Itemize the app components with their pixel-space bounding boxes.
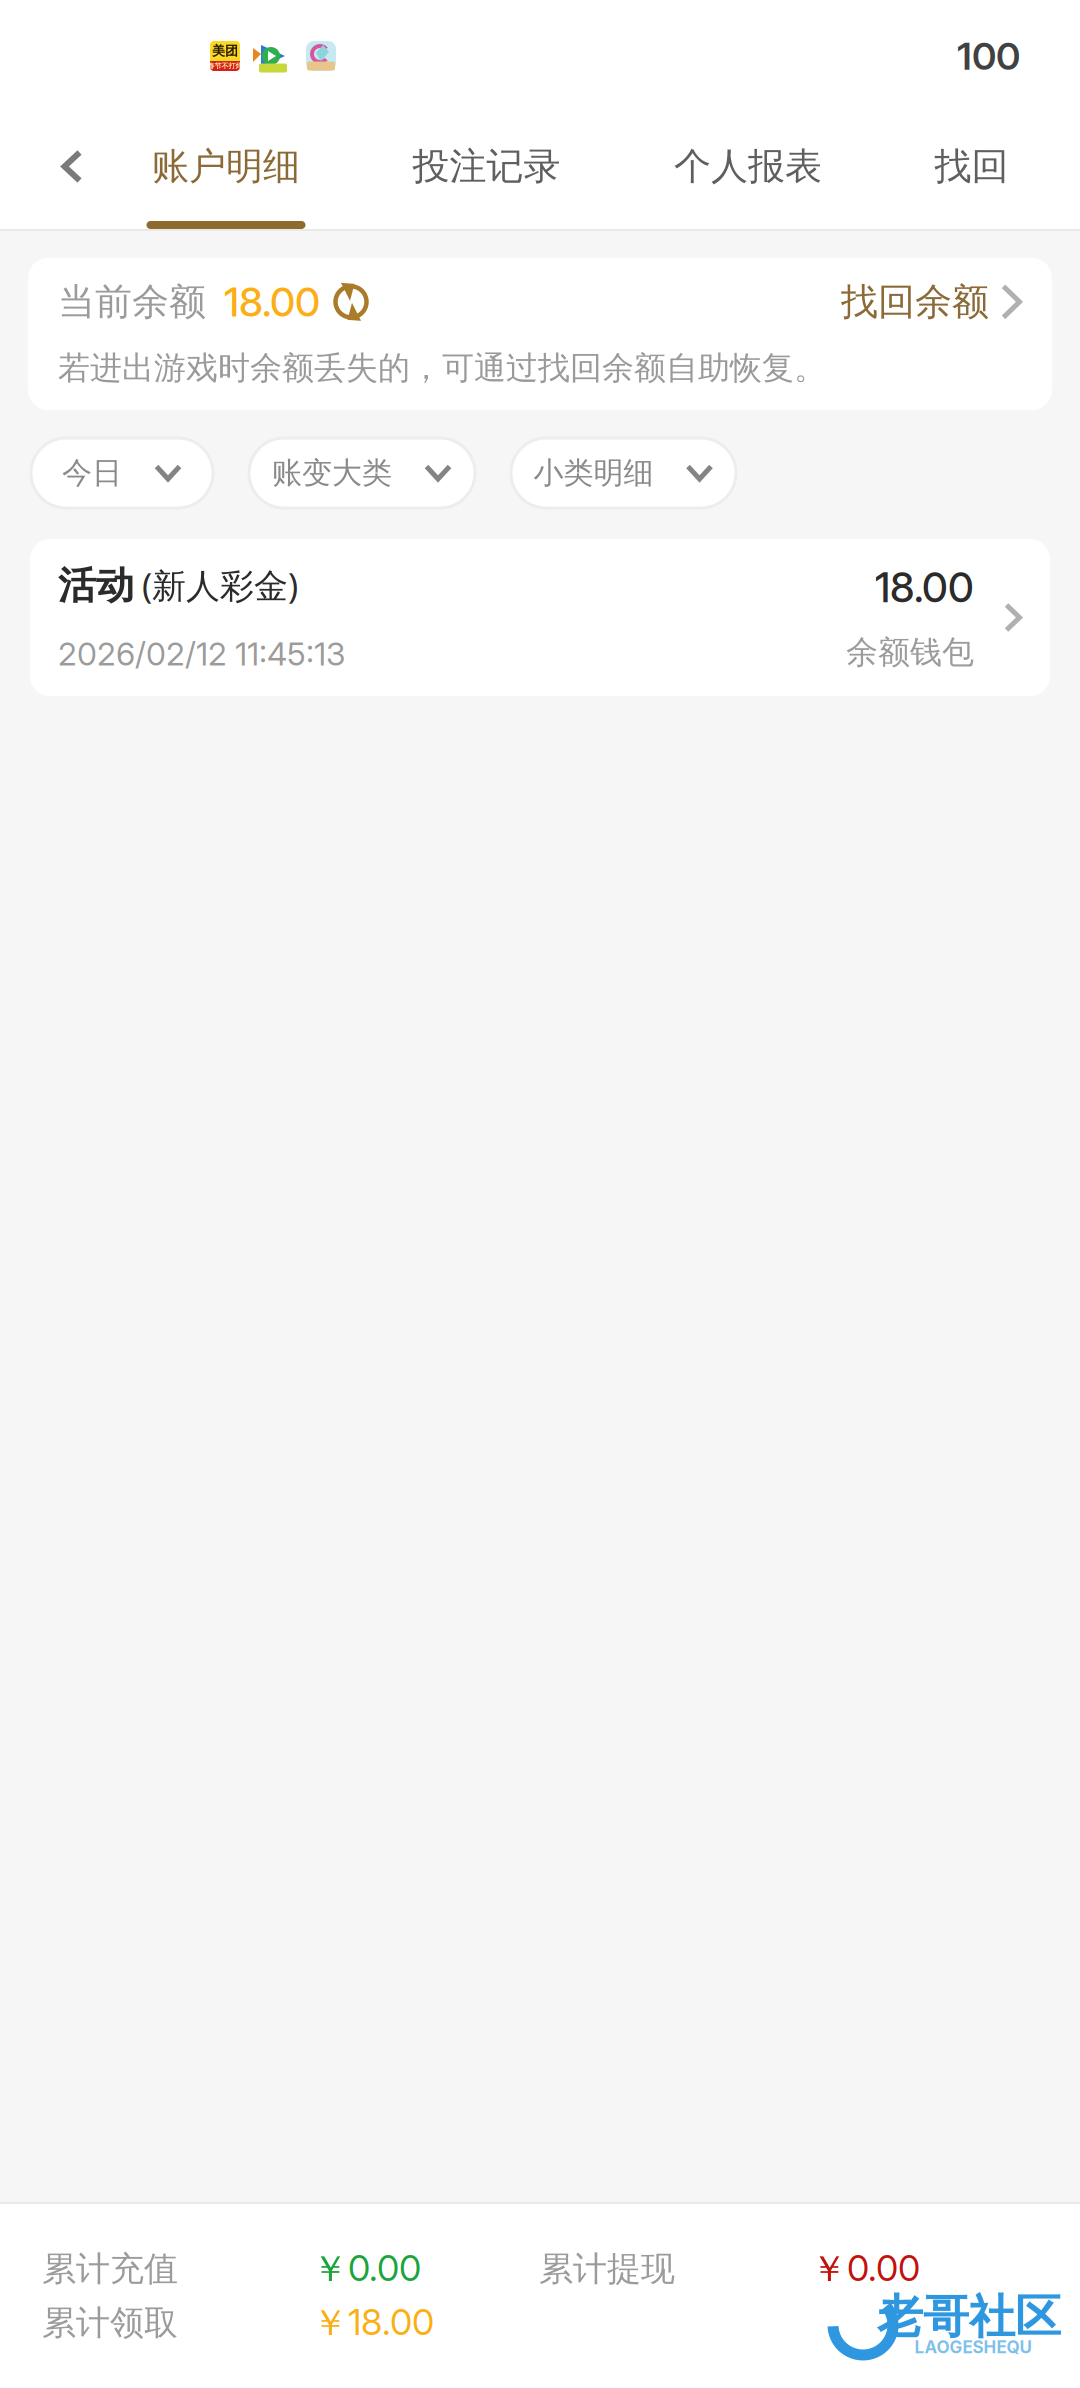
staticText: 若进出游戏时余额丢失的，可通过找回余额自助恢复。 [58,348,826,388]
staticText: 小类明细 [533,454,653,492]
staticText: 100 [957,33,1020,79]
staticText: 个人报表 [674,143,822,190]
staticText: 累计领取 [42,2302,178,2344]
staticText: 春节不打烊 [207,62,242,70]
staticText: ￥0.00 [811,2246,920,2292]
staticText: 18.00 [224,278,320,326]
staticText: 当前余额 [58,278,206,325]
staticText: 找回 [934,143,1008,190]
button[interactable]: Back [0,112,96,229]
staticText: 账变大类 [272,454,392,492]
staticText: 投注记录 [412,143,560,190]
button[interactable]: 账户明细 [96,112,356,229]
staticText: 美团 [212,43,238,59]
staticText: 累计充值 [42,2248,178,2290]
staticText: 账户明细 [152,143,300,190]
staticText: 老哥社区 [877,2288,1061,2346]
staticText: ￥18.00 [312,2300,434,2346]
staticText: ￥0.00 [312,2246,421,2292]
button[interactable]: 找回余额 [841,278,1022,325]
staticText: 今日 [62,454,122,492]
staticText: LAOGESHEQU [914,2337,1031,2357]
staticText: 18.00 [875,562,974,612]
button[interactable]: 小类明细 [511,438,736,508]
button[interactable]: 活动 [30,539,1050,696]
button[interactable]: 投注记录 [356,112,617,229]
staticText: (新人彩金) [142,562,298,608]
button[interactable]: 账变大类 [249,438,475,508]
button[interactable]: 个人报表 [617,112,879,229]
button[interactable]: 今日 [31,438,213,508]
button[interactable]: 找回 [879,112,1064,229]
staticText: 找回余额 [841,278,989,325]
staticText: 2026/02/12 11:45:13 [58,635,345,673]
staticText: 累计提现 [539,2248,675,2290]
staticText: 活动 [58,562,134,610]
staticText: 余额钱包 [846,632,974,672]
